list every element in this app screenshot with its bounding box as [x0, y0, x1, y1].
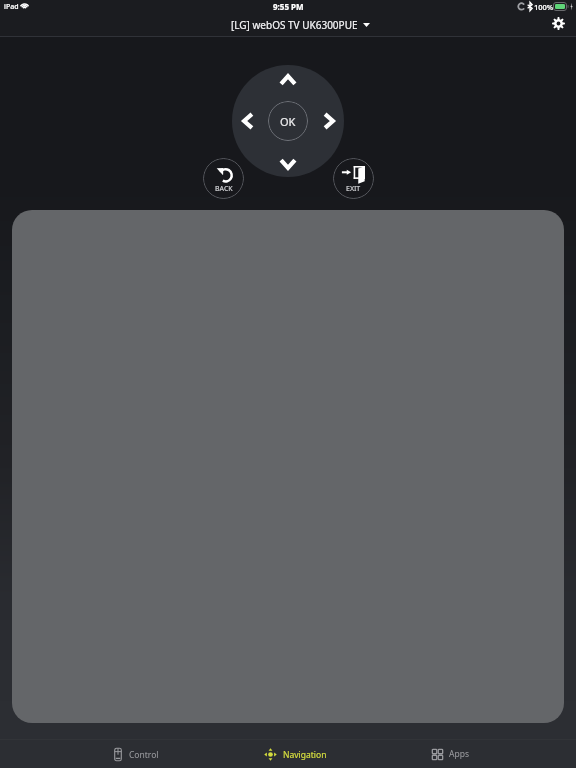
- staticText: 100%: [534, 2, 554, 12]
- button[interactable]: Down: [260, 149, 316, 177]
- staticText: [LG] webOS TV UK6300PUE: [231, 18, 358, 32]
- button[interactable]: Left: [232, 93, 260, 149]
- button[interactable]: OK: [268, 101, 308, 141]
- staticText: 9:55 PM: [273, 1, 304, 12]
- button[interactable]: Navigation: [245, 740, 345, 768]
- button[interactable]: Control: [86, 740, 186, 768]
- button[interactable]: Up: [260, 65, 316, 93]
- button[interactable]: EXIT: [333, 158, 374, 199]
- button[interactable]: [LG] webOS TV UK6300PUE: [227, 16, 374, 34]
- staticText: BACK: [215, 184, 233, 194]
- button[interactable]: Apps: [400, 740, 500, 768]
- button[interactable]: Right: [316, 93, 344, 149]
- staticText: iPad: [4, 2, 19, 12]
- button[interactable]: Settings: [546, 14, 571, 32]
- staticText: OK: [280, 114, 296, 129]
- staticText: Control: [129, 749, 159, 761]
- staticText: Navigation: [283, 749, 327, 761]
- staticText: Apps: [449, 748, 469, 760]
- button[interactable]: BACK: [203, 158, 244, 199]
- staticText: EXIT: [346, 184, 361, 194]
